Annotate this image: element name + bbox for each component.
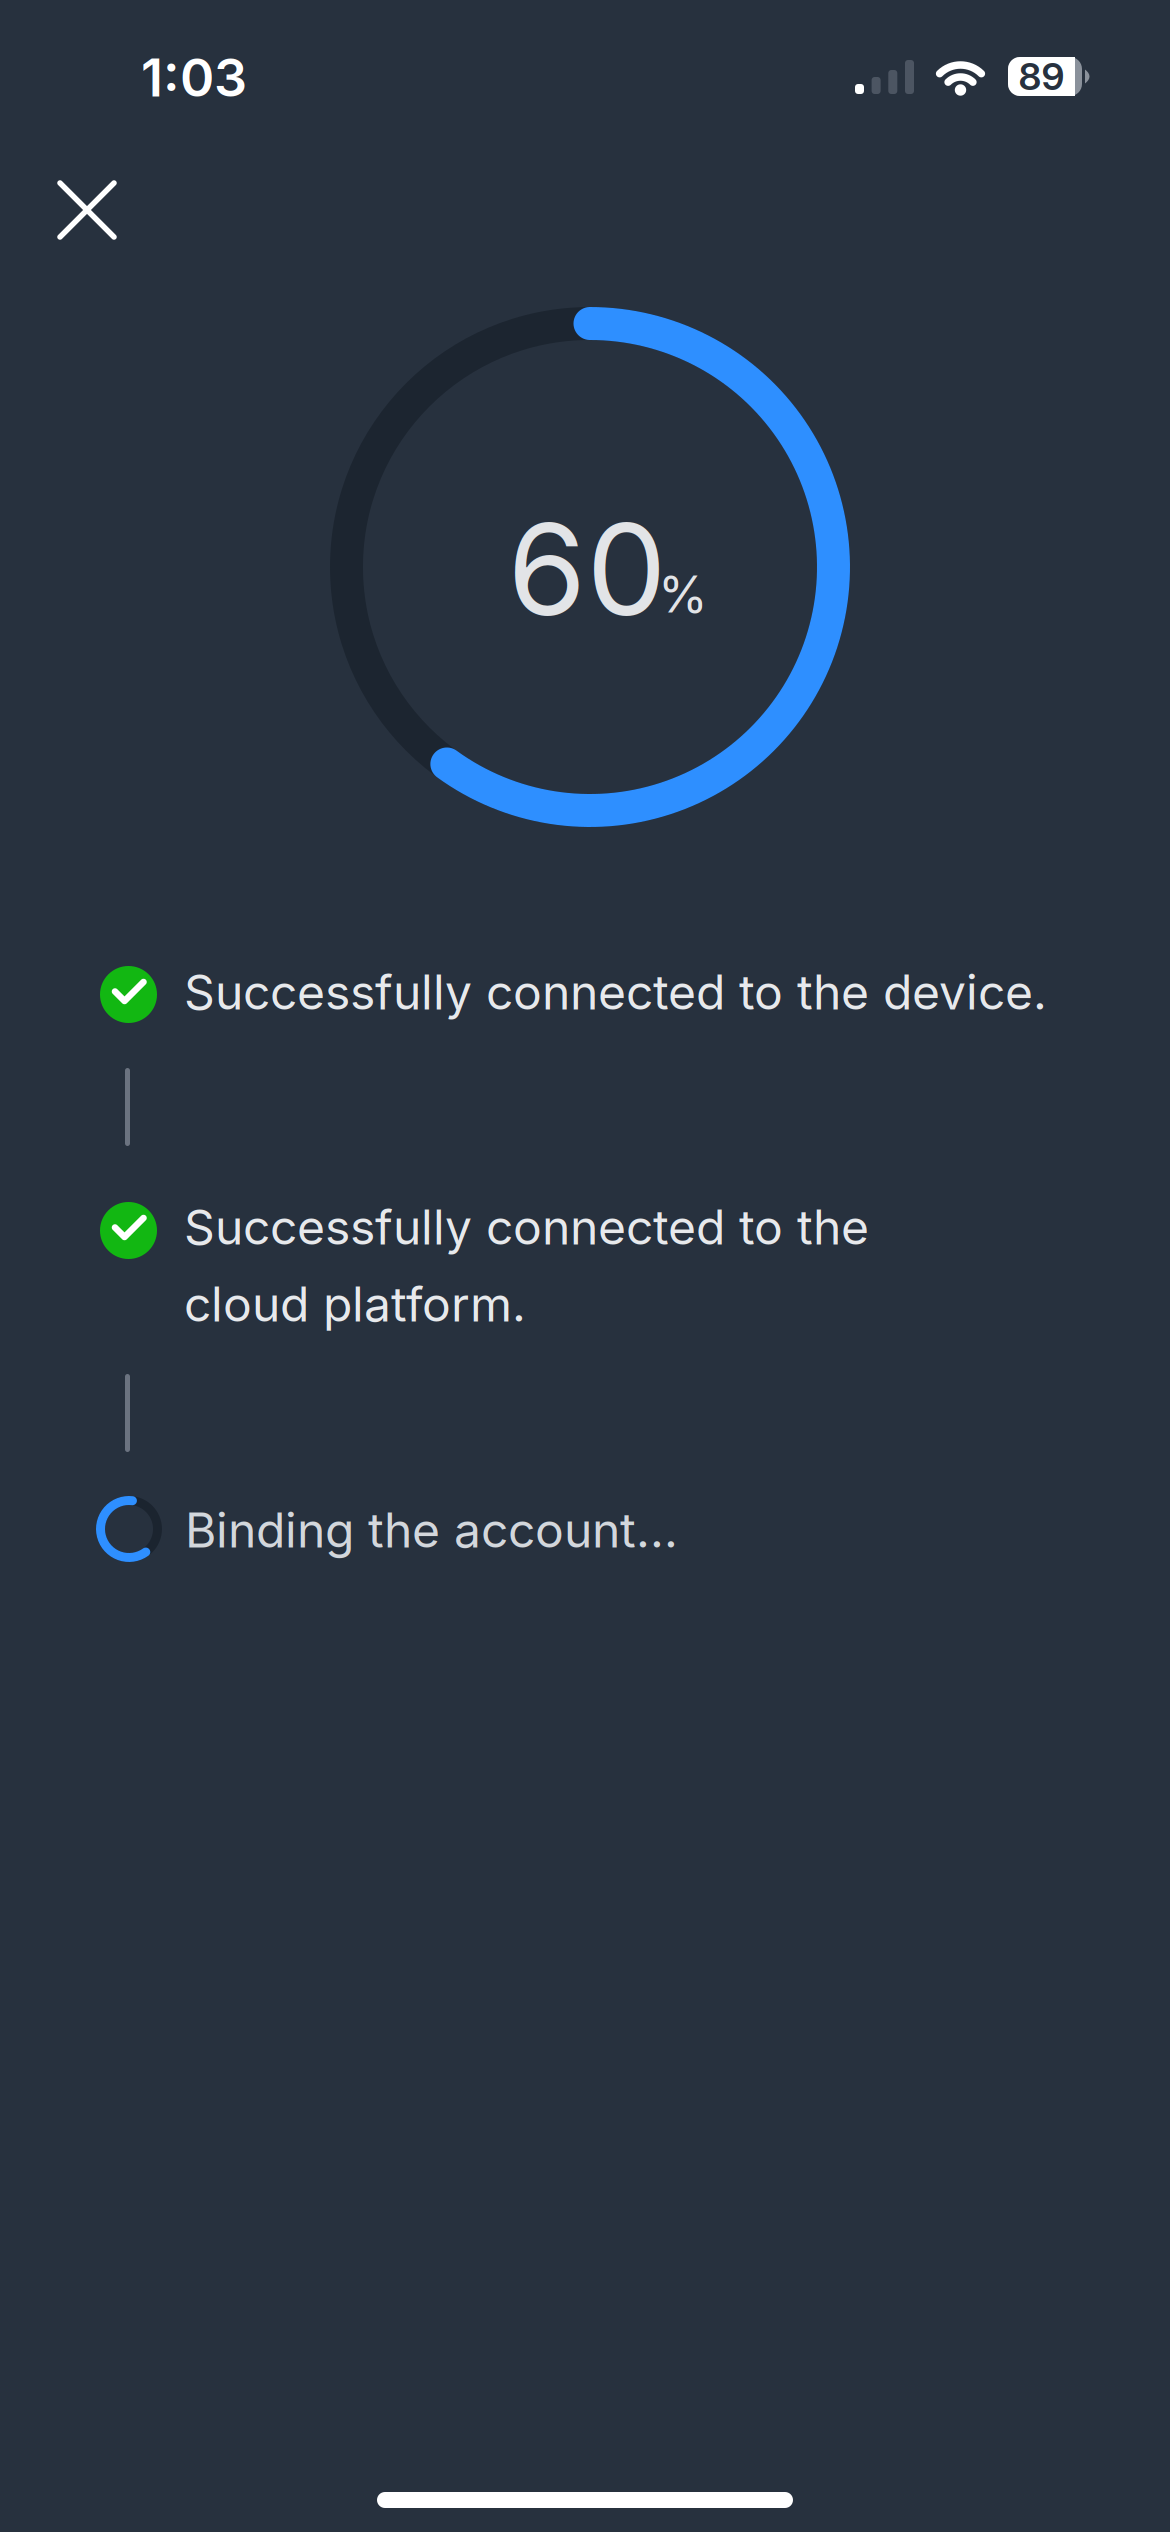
button[interactable]: Close [57,180,117,240]
staticText: Successfully connected to the cloud plat… [184,1198,869,1333]
staticText: 1:03 [141,46,247,109]
staticText: Binding the account... [185,1501,678,1559]
staticText: 60 [507,492,666,646]
staticText: Successfully connected to the device. [184,963,1047,1021]
staticText: % [658,563,708,625]
staticText: 89 [1018,54,1064,99]
